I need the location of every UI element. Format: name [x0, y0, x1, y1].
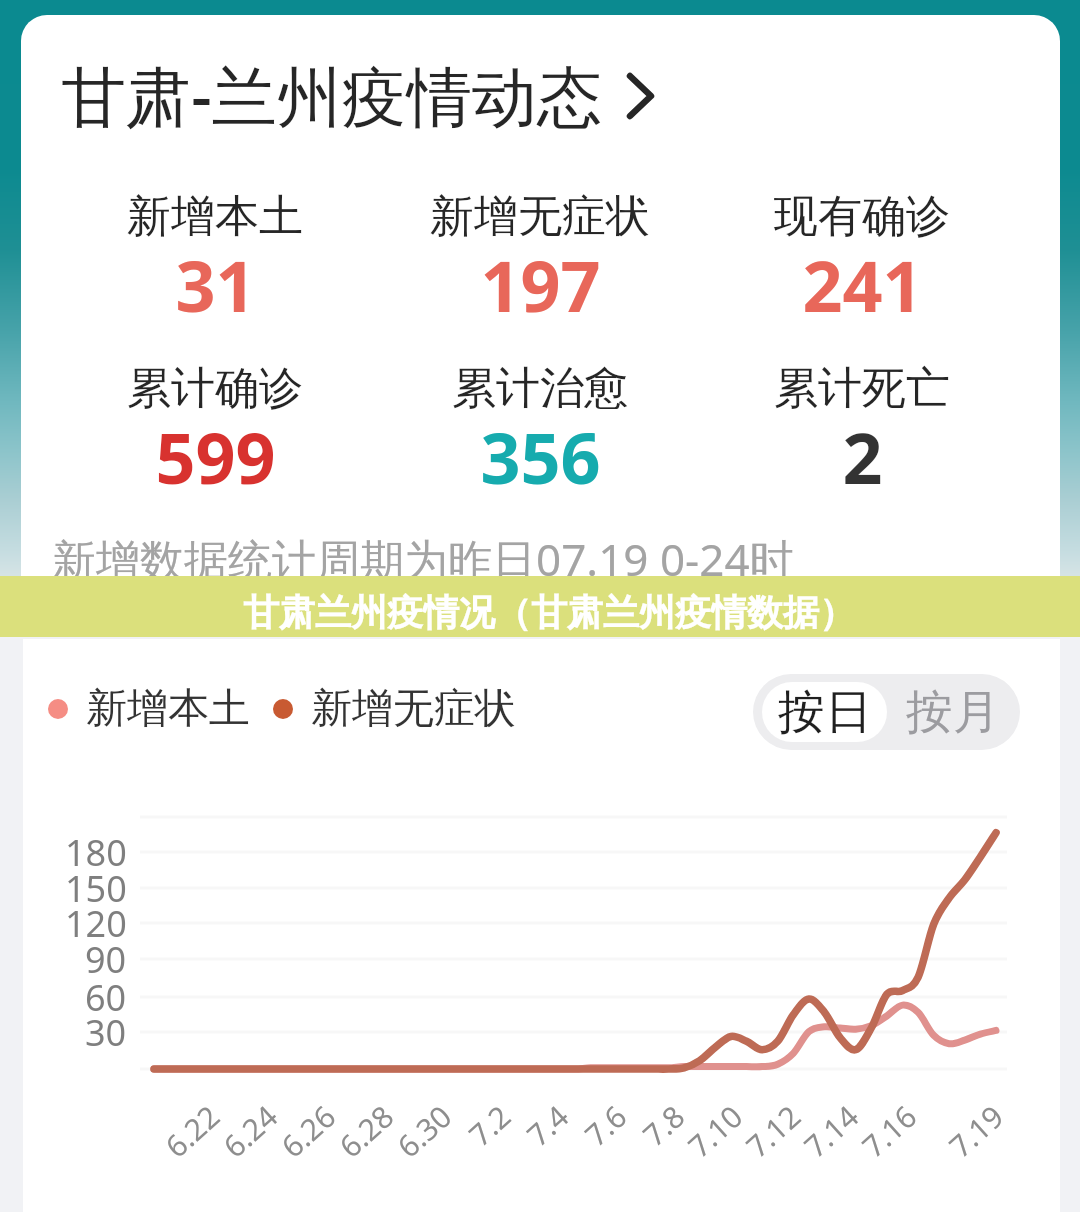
staticText: 新增无症状	[311, 683, 516, 735]
staticText: 150	[65, 864, 127, 913]
staticText: 6.28	[330, 1096, 402, 1166]
staticText: 6.30	[388, 1096, 460, 1166]
staticText: 241	[802, 237, 923, 332]
staticText: 7.8	[634, 1096, 693, 1155]
staticText: 90	[85, 935, 127, 984]
staticText: 2	[842, 409, 883, 504]
staticText: 7.6	[576, 1096, 635, 1155]
staticText: 7.2	[460, 1096, 519, 1155]
staticText: 按月	[906, 683, 1000, 742]
staticText: 6.26	[272, 1096, 344, 1166]
staticText: 7.14	[795, 1096, 867, 1166]
other: 查看详情	[627, 73, 654, 119]
staticText: 180	[65, 828, 127, 877]
staticText: 7.12	[737, 1096, 809, 1166]
staticText: 197	[480, 237, 601, 332]
button[interactable]: 按日	[762, 682, 887, 742]
staticText: 新增本土	[127, 189, 303, 244]
staticText: 6.22	[156, 1096, 228, 1166]
staticText: 甘肃-兰州疫情动态	[61, 51, 602, 140]
staticText: 新增无症状	[430, 189, 650, 244]
staticText: 现有确诊	[774, 189, 950, 244]
staticText: 7.16	[853, 1096, 925, 1166]
staticText: 356	[480, 409, 601, 504]
staticText: 6.24	[214, 1096, 286, 1166]
staticText: 累计死亡	[774, 361, 950, 416]
staticText: 30	[85, 1008, 127, 1057]
button[interactable]: 按月	[890, 682, 1015, 742]
staticText: 31	[175, 237, 256, 332]
staticText: 新增本土	[86, 683, 250, 735]
staticText: 累计治愈	[452, 361, 628, 416]
staticText: 599	[155, 409, 276, 504]
button[interactable]: 甘肃-兰州疫情动态	[61, 51, 654, 140]
staticText: 60	[85, 973, 127, 1022]
staticText: 甘肃兰州疫情况（甘肃兰州疫情数据）	[243, 590, 855, 635]
staticText: 新增数据统计周期为昨日07.19 0-24时	[52, 529, 794, 589]
staticText: 7.4	[518, 1096, 577, 1155]
staticText: 7.19	[940, 1096, 1012, 1166]
staticText: 累计确诊	[127, 361, 303, 416]
staticText: 120	[65, 899, 127, 948]
staticText: 7.10	[679, 1096, 751, 1166]
staticText: 按日	[778, 683, 872, 742]
